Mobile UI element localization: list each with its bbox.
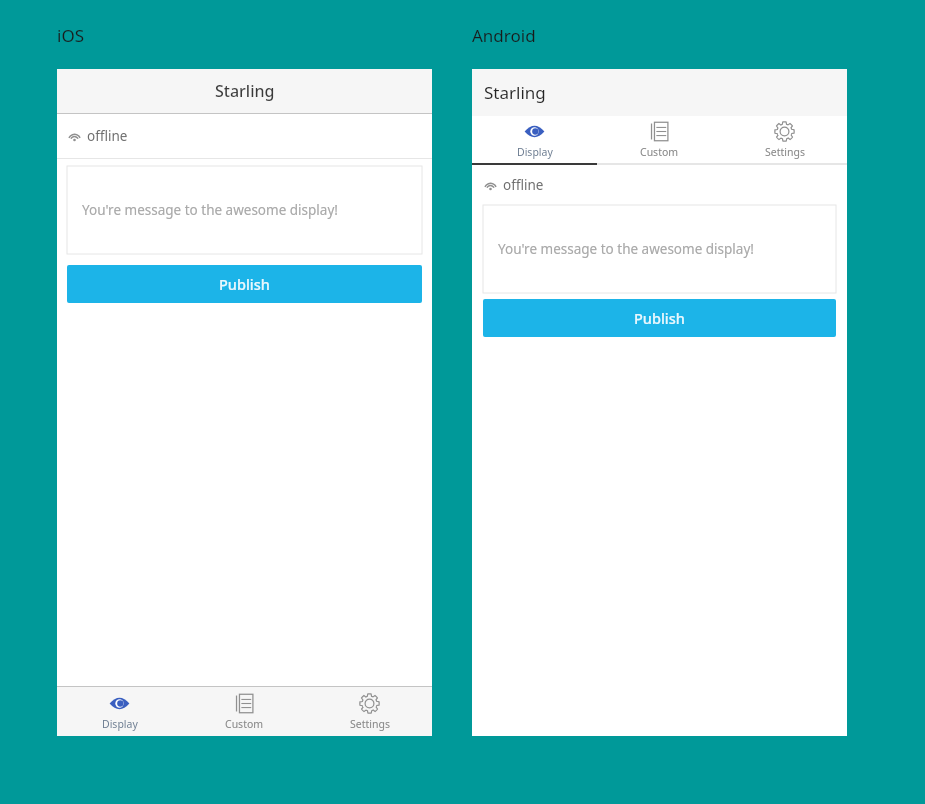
staticText: Custom — [225, 717, 264, 731]
button[interactable]: Display — [57, 687, 182, 736]
staticText: iOS — [57, 24, 84, 47]
staticText: Settings — [350, 717, 390, 731]
staticText: Custom — [640, 145, 679, 159]
button[interactable]: Publish — [67, 265, 422, 303]
staticText: Display — [102, 717, 138, 731]
staticText: Publish — [219, 274, 270, 294]
button[interactable]: You're message to the awesome display! — [483, 205, 836, 293]
other: Connection status — [68, 130, 81, 143]
staticText: You're message to the awesome display! — [498, 240, 754, 258]
staticText: Starling — [484, 81, 546, 104]
other: Settings — [774, 121, 795, 142]
button[interactable]: Custom — [182, 687, 307, 736]
staticText: Settings — [765, 145, 805, 159]
staticText: offline — [87, 127, 128, 145]
other: Custom — [234, 693, 255, 714]
staticText: Publish — [634, 308, 685, 328]
staticText: offline — [503, 176, 544, 194]
other: Connection status — [484, 179, 497, 192]
other: Display — [524, 121, 545, 142]
other: Display — [109, 693, 130, 714]
other: Settings — [359, 693, 380, 714]
button[interactable]: Publish — [483, 299, 836, 337]
button[interactable]: Display — [472, 116, 597, 163]
staticText: Display — [517, 145, 553, 159]
button[interactable]: You're message to the awesome display! — [67, 166, 422, 254]
staticText: Starling — [215, 80, 275, 102]
other: Custom — [649, 121, 670, 142]
button[interactable]: Custom — [597, 116, 722, 163]
staticText: Android — [472, 24, 536, 47]
staticText: You're message to the awesome display! — [82, 201, 338, 219]
button[interactable]: Settings — [307, 687, 432, 736]
button[interactable]: Settings — [722, 116, 847, 163]
